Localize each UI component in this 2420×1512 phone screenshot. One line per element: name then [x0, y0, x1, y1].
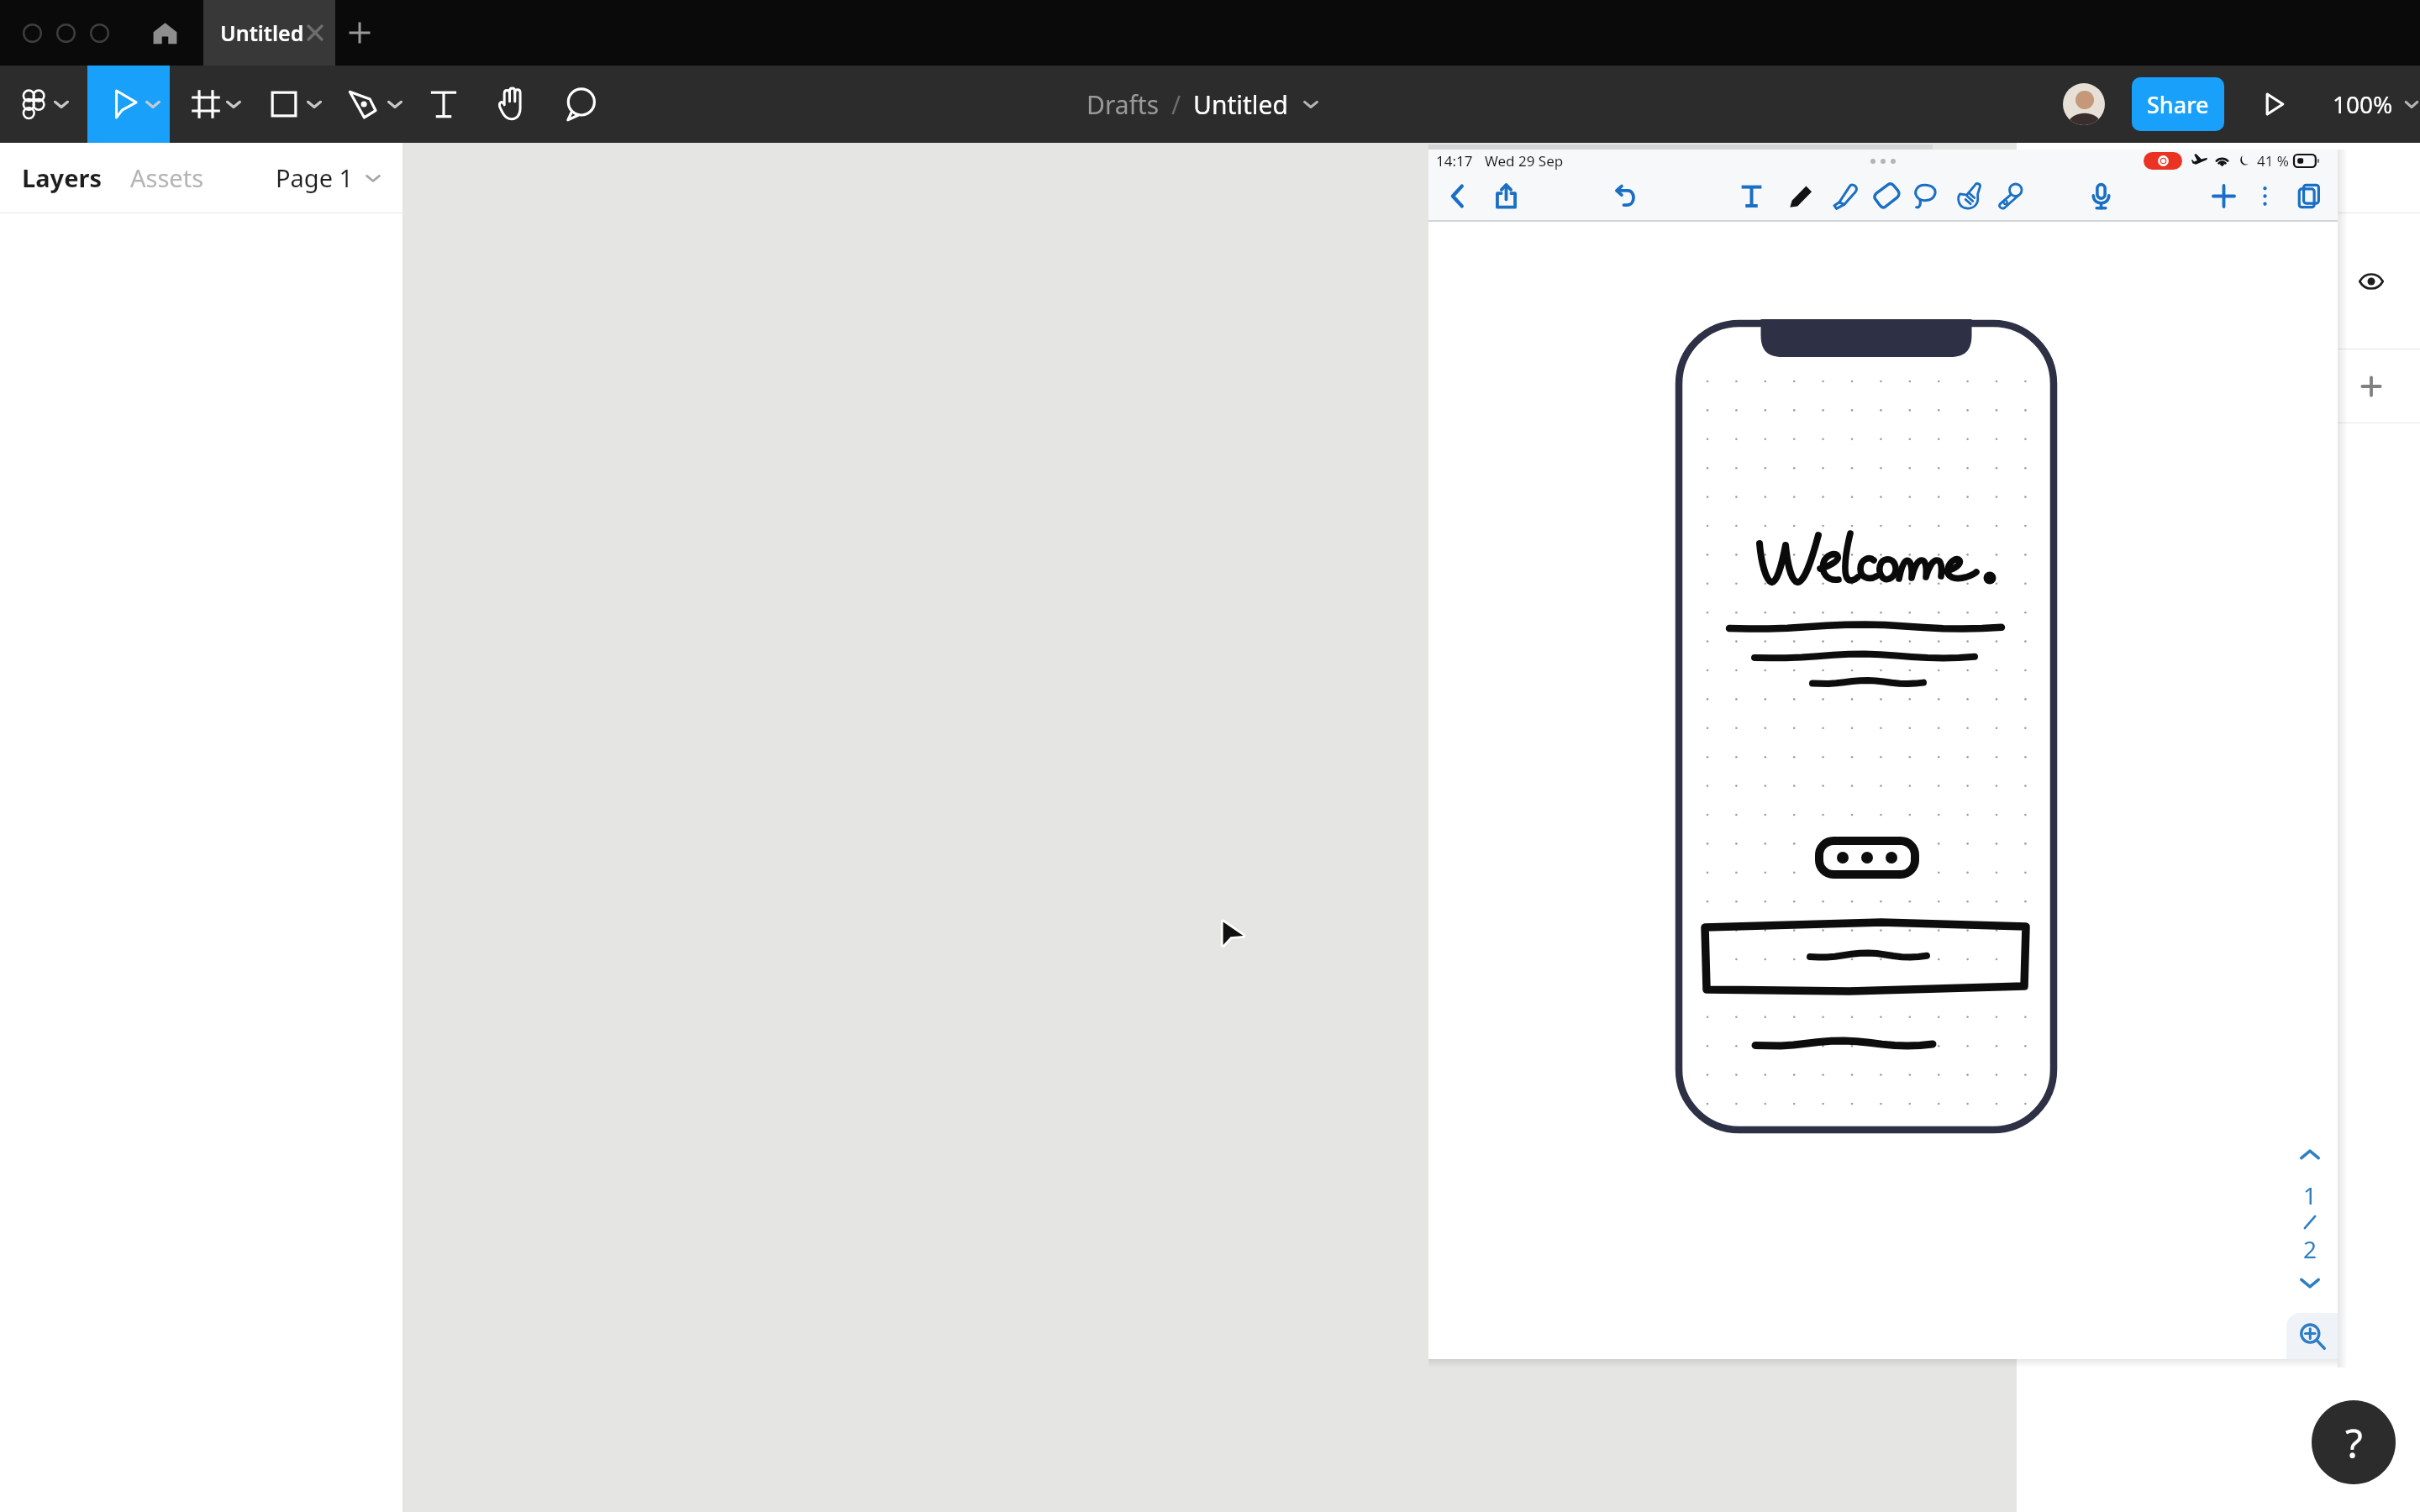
- button[interactable]: Drafts: [1086, 87, 1160, 122]
- button[interactable]: Back: [1437, 172, 1477, 220]
- staticText: 2: [2303, 1233, 2317, 1265]
- staticText: Wed 29 Sep: [1485, 151, 1564, 171]
- button[interactable]: Microphone: [2081, 172, 2121, 220]
- button[interactable]: Pen tool: [337, 66, 387, 143]
- button[interactable]: Toggle visibility: [2351, 261, 2391, 302]
- button[interactable]: New tab: [339, 0, 380, 66]
- staticText: Untitled: [220, 18, 304, 47]
- staticText: ?: [2345, 1415, 2363, 1470]
- button[interactable]: Assets: [130, 161, 204, 194]
- button[interactable]: Help: [2312, 1400, 2396, 1484]
- button[interactable]: Present: [2254, 66, 2294, 143]
- button[interactable]: Comment: [555, 66, 606, 143]
- button[interactable]: Frame tool: [181, 66, 231, 143]
- button[interactable]: Share: [2132, 77, 2224, 131]
- staticText: 41 %: [2257, 151, 2289, 171]
- button[interactable]: Untitled: [203, 0, 335, 66]
- staticText: Share: [2147, 89, 2209, 120]
- button[interactable]: Text tool: [418, 66, 469, 143]
- staticText: 1: [2303, 1179, 2317, 1211]
- button[interactable]: Add: [2351, 366, 2391, 407]
- button[interactable]: Lasso: [1904, 172, 1944, 220]
- button[interactable]: Laser pointer: [1989, 172, 2029, 220]
- button[interactable]: Highlighter: [1824, 172, 1865, 220]
- button[interactable]: 100%: [2333, 66, 2420, 143]
- staticText: 14:17: [1436, 151, 1473, 171]
- button[interactable]: Layers: [22, 161, 102, 194]
- button[interactable]: Figma menu: [9, 66, 60, 143]
- button[interactable]: Undo: [1605, 172, 1645, 220]
- button[interactable]: Pages: [2288, 172, 2328, 220]
- button[interactable]: Eraser: [1866, 172, 1907, 220]
- button[interactable]: More: [2244, 172, 2285, 220]
- button[interactable]: Add page: [2203, 172, 2244, 220]
- button[interactable]: Shape tool: [259, 66, 309, 143]
- button[interactable]: Next page: [2297, 1270, 2323, 1295]
- button[interactable]: Zoom in: [2286, 1313, 2338, 1359]
- button[interactable]: Home: [141, 0, 188, 66]
- button[interactable]: Pointer: [1948, 172, 1988, 220]
- button[interactable]: Previous page: [2297, 1142, 2323, 1168]
- button[interactable]: Page 1: [276, 161, 382, 194]
- staticText: Page 1: [276, 161, 354, 194]
- button[interactable]: Move tool: [98, 66, 149, 143]
- button[interactable]: Untitled: [1193, 87, 1288, 122]
- button[interactable]: Pen: [1781, 172, 1821, 220]
- staticText: /: [1171, 87, 1181, 122]
- button[interactable]: Account: [2063, 83, 2105, 125]
- button[interactable]: Share: [1486, 172, 1526, 220]
- staticText: 100%: [2333, 88, 2393, 120]
- button[interactable]: Hand tool: [487, 66, 537, 143]
- button[interactable]: Text: [1731, 172, 1771, 220]
